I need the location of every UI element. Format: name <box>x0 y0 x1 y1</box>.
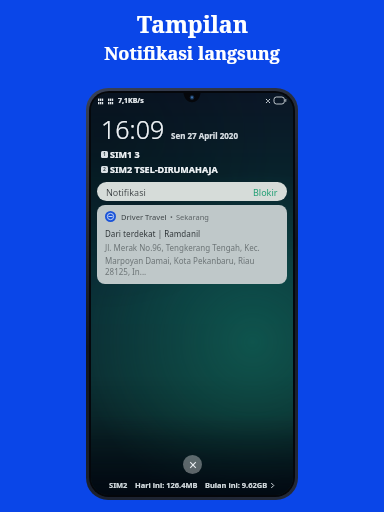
staticText: Dari terdekat | Ramdanil <box>105 228 201 239</box>
button[interactable]: Notifikasi <box>97 182 287 201</box>
staticText: SIM2 TSEL-DIRUMAHAJA <box>110 163 218 175</box>
staticText: 2 <box>103 166 106 173</box>
staticText: • <box>170 212 173 222</box>
staticText: Notifikasi langsung <box>104 41 280 66</box>
staticText: Sekarang <box>176 212 209 222</box>
staticText: Hari ini: 126.4MB <box>135 480 198 490</box>
staticText: Sen 27 April 2020 <box>171 130 239 141</box>
staticText: 7,1KB/s <box>118 96 144 106</box>
button[interactable]: SIM2 <box>91 480 293 490</box>
staticText: 1 <box>103 151 106 158</box>
button[interactable]: Driver Travel <box>97 205 287 284</box>
staticText: Bulan ini: 9.62GB <box>205 480 268 490</box>
staticText: SIM1 3 <box>110 148 140 160</box>
staticText: 16:09 <box>101 112 165 146</box>
button[interactable]: Close <box>183 455 202 474</box>
staticText: Blokir <box>253 186 278 198</box>
staticText: Jl. Merak No.96, Tengkerang Tengah, Kec. <box>105 242 260 253</box>
staticText: Driver Travel <box>121 212 167 222</box>
staticText: SIM2 <box>109 480 128 490</box>
staticText: Tampilan <box>137 8 248 39</box>
staticText: Notifikasi <box>106 186 146 198</box>
staticText: Marpoyan Damai, Kota Pekanbaru, Riau 281… <box>105 255 279 277</box>
